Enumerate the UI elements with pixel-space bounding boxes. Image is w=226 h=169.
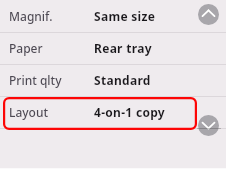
staticText: Same size: [94, 8, 156, 24]
staticText: Rear tray: [94, 40, 152, 56]
staticText: Standard: [94, 72, 151, 88]
staticText: Magnif.: [9, 8, 53, 24]
button[interactable]: Print qlty: [0, 65, 226, 97]
staticText: Layout: [9, 104, 49, 120]
button[interactable]: Scroll up: [198, 4, 219, 25]
button[interactable]: Layout: [0, 97, 226, 129]
staticText: Print qlty: [9, 72, 62, 88]
button[interactable]: Magnif.: [0, 1, 226, 33]
staticText: Paper: [9, 40, 43, 56]
button[interactable]: Scroll down: [198, 115, 219, 136]
staticText: 4-on-1 copy: [94, 104, 166, 120]
button[interactable]: Paper: [0, 33, 226, 65]
